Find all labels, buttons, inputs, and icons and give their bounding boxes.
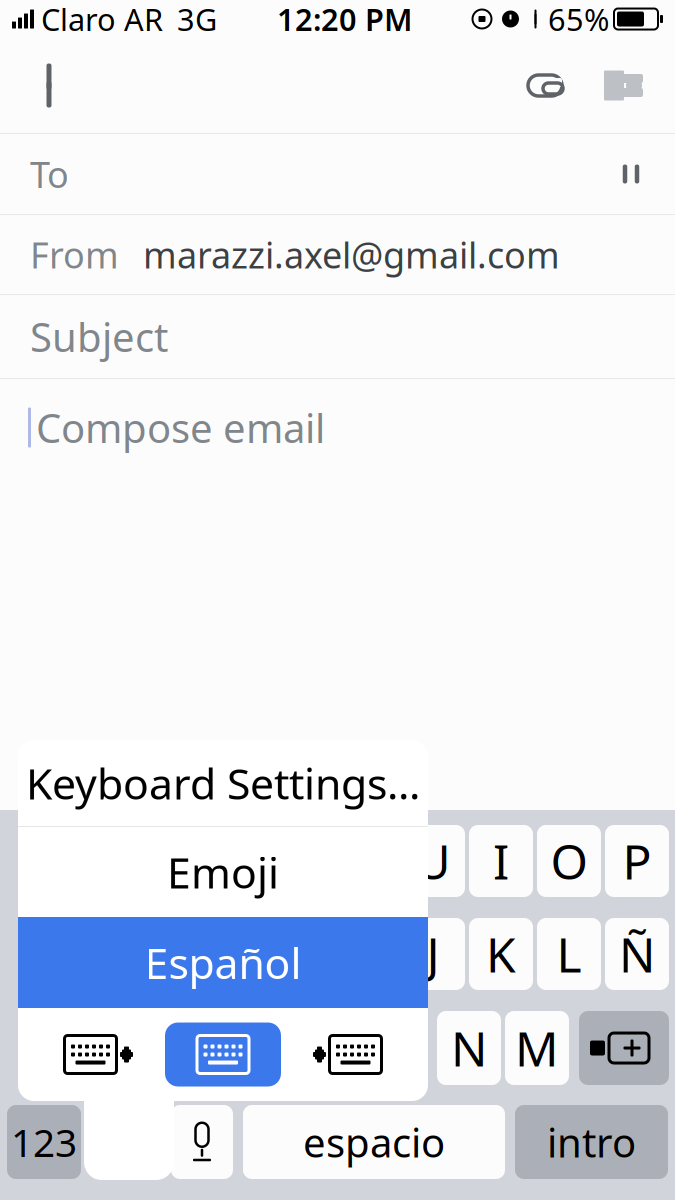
button[interactable]: Compose email bbox=[0, 379, 675, 709]
button[interactable]: To bbox=[0, 134, 675, 214]
button[interactable]: N bbox=[437, 1011, 501, 1085]
staticText: Compose email bbox=[36, 401, 325, 454]
button[interactable]: Dock keyboard left bbox=[44, 1022, 154, 1086]
button[interactable]: 123 bbox=[7, 1105, 81, 1179]
button[interactable]: Español bbox=[18, 917, 428, 1008]
staticText: From bbox=[30, 231, 119, 278]
button[interactable]: From bbox=[0, 215, 675, 294]
staticText: Emoji bbox=[167, 844, 279, 900]
button[interactable]: Ñ bbox=[605, 918, 669, 990]
staticText: intro bbox=[547, 1115, 636, 1168]
staticText: 3G bbox=[177, 0, 217, 39]
button[interactable]: intro bbox=[515, 1105, 668, 1179]
staticText: Ñ bbox=[619, 922, 655, 986]
button[interactable]: Emoji bbox=[18, 827, 428, 917]
staticText: espacio bbox=[303, 1115, 445, 1168]
staticText: Claro AR bbox=[41, 0, 163, 39]
staticText: L bbox=[556, 922, 581, 986]
button[interactable]: Dock keyboard right bbox=[292, 1022, 402, 1086]
button[interactable]: espacio bbox=[243, 1105, 505, 1179]
button[interactable]: Delete bbox=[579, 1011, 669, 1085]
staticText: 65% bbox=[548, 0, 609, 39]
button[interactable]: Back bbox=[6, 42, 78, 128]
staticText: I bbox=[493, 829, 509, 893]
staticText: 123 bbox=[11, 1116, 77, 1168]
button[interactable]: Full keyboard bbox=[165, 1022, 281, 1086]
button[interactable]: I bbox=[469, 825, 533, 897]
staticText: P bbox=[622, 829, 651, 893]
button[interactable]: Keyboard Settings... bbox=[18, 740, 428, 826]
staticText: marazzi.axel@gmail.com bbox=[143, 231, 560, 278]
button[interactable]: L bbox=[537, 918, 601, 990]
staticText: J bbox=[426, 922, 439, 986]
staticText: K bbox=[486, 922, 516, 986]
button[interactable]: U bbox=[401, 825, 465, 897]
button[interactable]: P bbox=[605, 825, 669, 897]
staticText: Subject bbox=[30, 310, 168, 363]
button[interactable]: K bbox=[469, 918, 533, 990]
staticText: To bbox=[30, 150, 69, 198]
button[interactable]: Attach file bbox=[507, 42, 583, 128]
staticText: 12:20 PM bbox=[277, 0, 412, 39]
staticText: Keyboard Settings... bbox=[26, 755, 420, 811]
staticText: N bbox=[451, 1016, 487, 1080]
button[interactable]: Dictate bbox=[171, 1105, 233, 1179]
button[interactable]: M bbox=[505, 1011, 569, 1085]
button[interactable]: O bbox=[537, 825, 601, 897]
staticText: U bbox=[415, 829, 450, 893]
staticText: O bbox=[550, 829, 587, 893]
button[interactable]: Subject bbox=[0, 295, 675, 378]
button[interactable]: J bbox=[401, 918, 465, 990]
staticText: M bbox=[515, 1016, 559, 1080]
staticText: Español bbox=[144, 934, 301, 991]
button[interactable]: Send bbox=[583, 42, 669, 128]
